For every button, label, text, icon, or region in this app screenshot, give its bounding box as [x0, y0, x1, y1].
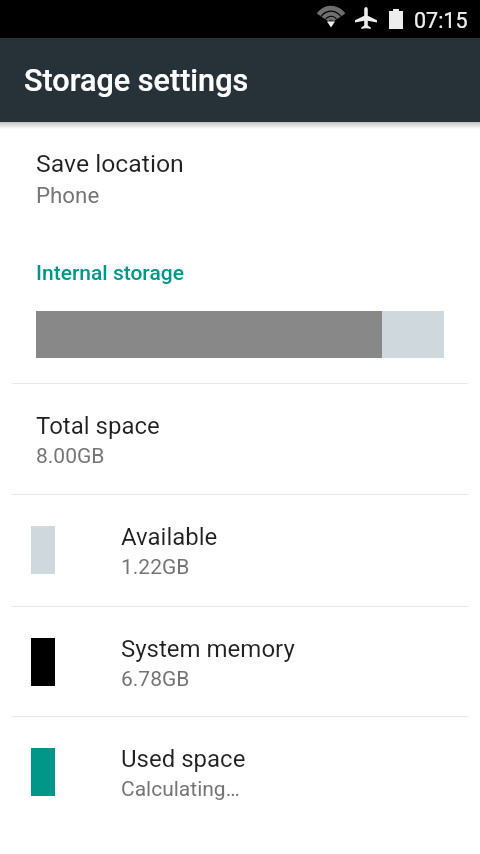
staticText: 6.78GB — [121, 667, 190, 692]
staticText: Available — [121, 523, 218, 551]
other: Airplane mode on — [355, 7, 377, 29]
staticText: Calculating… — [121, 777, 240, 802]
staticText: Used space — [121, 745, 246, 773]
button[interactable]: System memory — [0, 606, 480, 717]
staticText: Total space — [36, 412, 160, 440]
staticText: 1.22GB — [121, 555, 190, 580]
staticText: Storage settings — [24, 63, 249, 99]
staticText: 8.00GB — [36, 444, 105, 469]
other: Wi-Fi not connected — [315, 5, 347, 29]
button[interactable]: Available — [0, 494, 480, 605]
button[interactable]: Save location — [0, 131, 480, 221]
staticText: System memory — [121, 635, 295, 663]
staticText: Save location — [36, 149, 184, 178]
button[interactable]: Total space — [0, 383, 480, 494]
staticText: Phone — [36, 182, 100, 208]
staticText: 07:15 — [414, 8, 468, 33]
staticText: Internal storage — [36, 261, 184, 286]
other: Battery full — [389, 9, 403, 29]
button[interactable]: Used space — [0, 716, 480, 827]
